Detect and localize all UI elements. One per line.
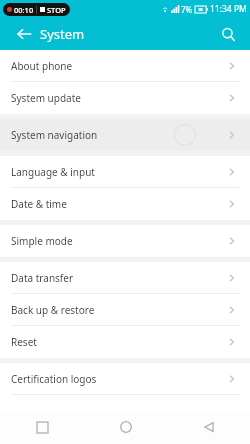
button[interactable]: Reset	[0, 326, 250, 358]
staticText: Certification logos	[11, 372, 97, 386]
staticText: Simple mode	[11, 234, 73, 248]
button[interactable]: About phone	[0, 50, 250, 82]
staticText: Data transfer	[11, 271, 74, 285]
button[interactable]: Data transfer	[0, 262, 250, 294]
button[interactable]: Home	[84, 410, 167, 444]
staticText: Date & time	[11, 197, 67, 211]
button[interactable]: System update	[0, 82, 250, 114]
button[interactable]: Back	[167, 410, 250, 444]
staticText: Reset	[11, 335, 37, 349]
staticText: System	[40, 25, 85, 43]
staticText: Language & input	[11, 165, 95, 179]
button[interactable]: Recent apps	[0, 410, 84, 444]
button[interactable]: Language & input	[0, 156, 250, 188]
staticText: System update	[11, 91, 81, 105]
button[interactable]: Date & time	[0, 188, 250, 220]
staticText: Back up & restore	[11, 303, 95, 317]
button[interactable]: Simple mode	[0, 225, 250, 257]
button[interactable]: Search	[214, 20, 242, 48]
button[interactable]: Certification logos	[0, 363, 250, 395]
button[interactable]: Back up & restore	[0, 294, 250, 326]
button[interactable]: Back	[10, 20, 38, 48]
staticText: 7%	[181, 4, 193, 15]
button[interactable]: System navigation	[0, 119, 250, 151]
staticText: About phone	[11, 59, 73, 73]
staticText: System navigation	[11, 128, 98, 142]
staticText: 11:34 PM	[210, 3, 247, 15]
staticText: STOP	[47, 5, 66, 15]
staticText: 00:10	[14, 5, 34, 15]
